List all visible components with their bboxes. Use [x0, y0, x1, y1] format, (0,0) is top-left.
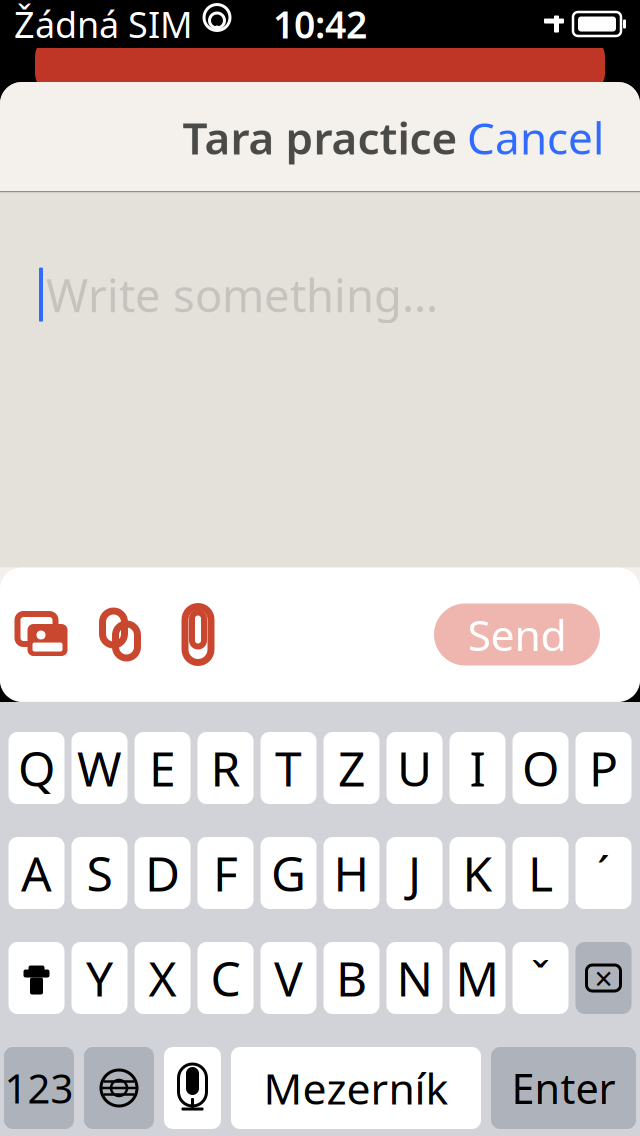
- button[interactable]: ´: [575, 837, 631, 909]
- button[interactable]: B: [323, 942, 379, 1014]
- staticText: Y: [86, 946, 113, 1010]
- staticText: E: [149, 736, 176, 800]
- button[interactable]: F: [197, 837, 253, 909]
- staticText: ˇ: [531, 948, 550, 1008]
- button[interactable]: ˇ: [512, 942, 568, 1014]
- button[interactable]: O: [512, 732, 568, 804]
- staticText: C: [210, 946, 240, 1010]
- button[interactable]: W: [71, 732, 127, 804]
- staticText: S: [86, 841, 112, 905]
- button[interactable]: V: [260, 942, 316, 1014]
- button[interactable]: L: [512, 837, 568, 909]
- staticText: O: [522, 736, 559, 800]
- staticText: D: [145, 841, 180, 905]
- button[interactable]: N: [386, 942, 442, 1014]
- staticText: I: [469, 736, 485, 800]
- button[interactable]: X: [134, 942, 190, 1014]
- button[interactable]: Q: [8, 732, 64, 804]
- staticText: B: [336, 946, 367, 1010]
- button[interactable]: J: [386, 837, 442, 909]
- staticText: 10:42: [273, 0, 367, 49]
- button[interactable]: T: [260, 732, 316, 804]
- staticText: A: [21, 841, 52, 905]
- staticText: J: [408, 841, 421, 905]
- button[interactable]: U: [386, 732, 442, 804]
- button[interactable]: Enter: [491, 1047, 636, 1129]
- staticText: M: [455, 946, 499, 1010]
- staticText: Tara practice: [182, 108, 457, 167]
- button[interactable]: Dictate: [164, 1047, 221, 1129]
- staticText: V: [274, 946, 303, 1010]
- staticText: K: [462, 841, 492, 905]
- staticText: F: [213, 841, 238, 905]
- button[interactable]: Add photo: [3, 584, 81, 684]
- staticText: ×: [594, 957, 612, 999]
- staticText: H: [333, 841, 369, 905]
- button[interactable]: 123: [4, 1047, 74, 1129]
- button[interactable]: Mezerník: [231, 1047, 481, 1129]
- staticText: Žádná SIM: [14, 0, 193, 48]
- staticText: Write something...: [46, 264, 438, 325]
- staticText: Z: [338, 736, 365, 800]
- button[interactable]: Z: [323, 732, 379, 804]
- staticText: R: [210, 736, 240, 800]
- staticText: W: [77, 736, 122, 800]
- staticText: Mezerník: [263, 1060, 448, 1116]
- button[interactable]: G: [260, 837, 316, 909]
- button[interactable]: Send: [434, 603, 600, 665]
- button[interactable]: H: [323, 837, 379, 909]
- button[interactable]: I: [449, 732, 505, 804]
- button[interactable]: C: [197, 942, 253, 1014]
- button[interactable]: Next keyboard: [84, 1047, 154, 1129]
- button[interactable]: K: [449, 837, 505, 909]
- staticText: Send: [467, 606, 566, 663]
- button[interactable]: A: [8, 837, 64, 909]
- staticText: N: [396, 946, 432, 1010]
- staticText: Cancel: [467, 108, 604, 167]
- button[interactable]: Shift: [8, 942, 64, 1014]
- button[interactable]: M: [449, 942, 505, 1014]
- staticText: G: [271, 841, 306, 905]
- button[interactable]: Delete: [575, 942, 631, 1014]
- staticText: T: [275, 736, 302, 800]
- button[interactable]: R: [197, 732, 253, 804]
- button[interactable]: S: [71, 837, 127, 909]
- staticText: ´: [597, 843, 610, 903]
- staticText: P: [589, 736, 618, 800]
- button[interactable]: Attach file: [159, 584, 237, 684]
- button[interactable]: D: [134, 837, 190, 909]
- staticText: Enter: [511, 1061, 615, 1115]
- staticText: L: [528, 841, 553, 905]
- button[interactable]: Cancel: [453, 94, 618, 181]
- button[interactable]: P: [575, 732, 631, 804]
- button[interactable]: E: [134, 732, 190, 804]
- staticText: 123: [4, 1061, 73, 1114]
- staticText: Q: [18, 736, 55, 800]
- button[interactable]: Y: [71, 942, 127, 1014]
- button[interactable]: Add link: [81, 584, 159, 684]
- staticText: X: [148, 946, 176, 1010]
- staticText: U: [397, 736, 432, 800]
